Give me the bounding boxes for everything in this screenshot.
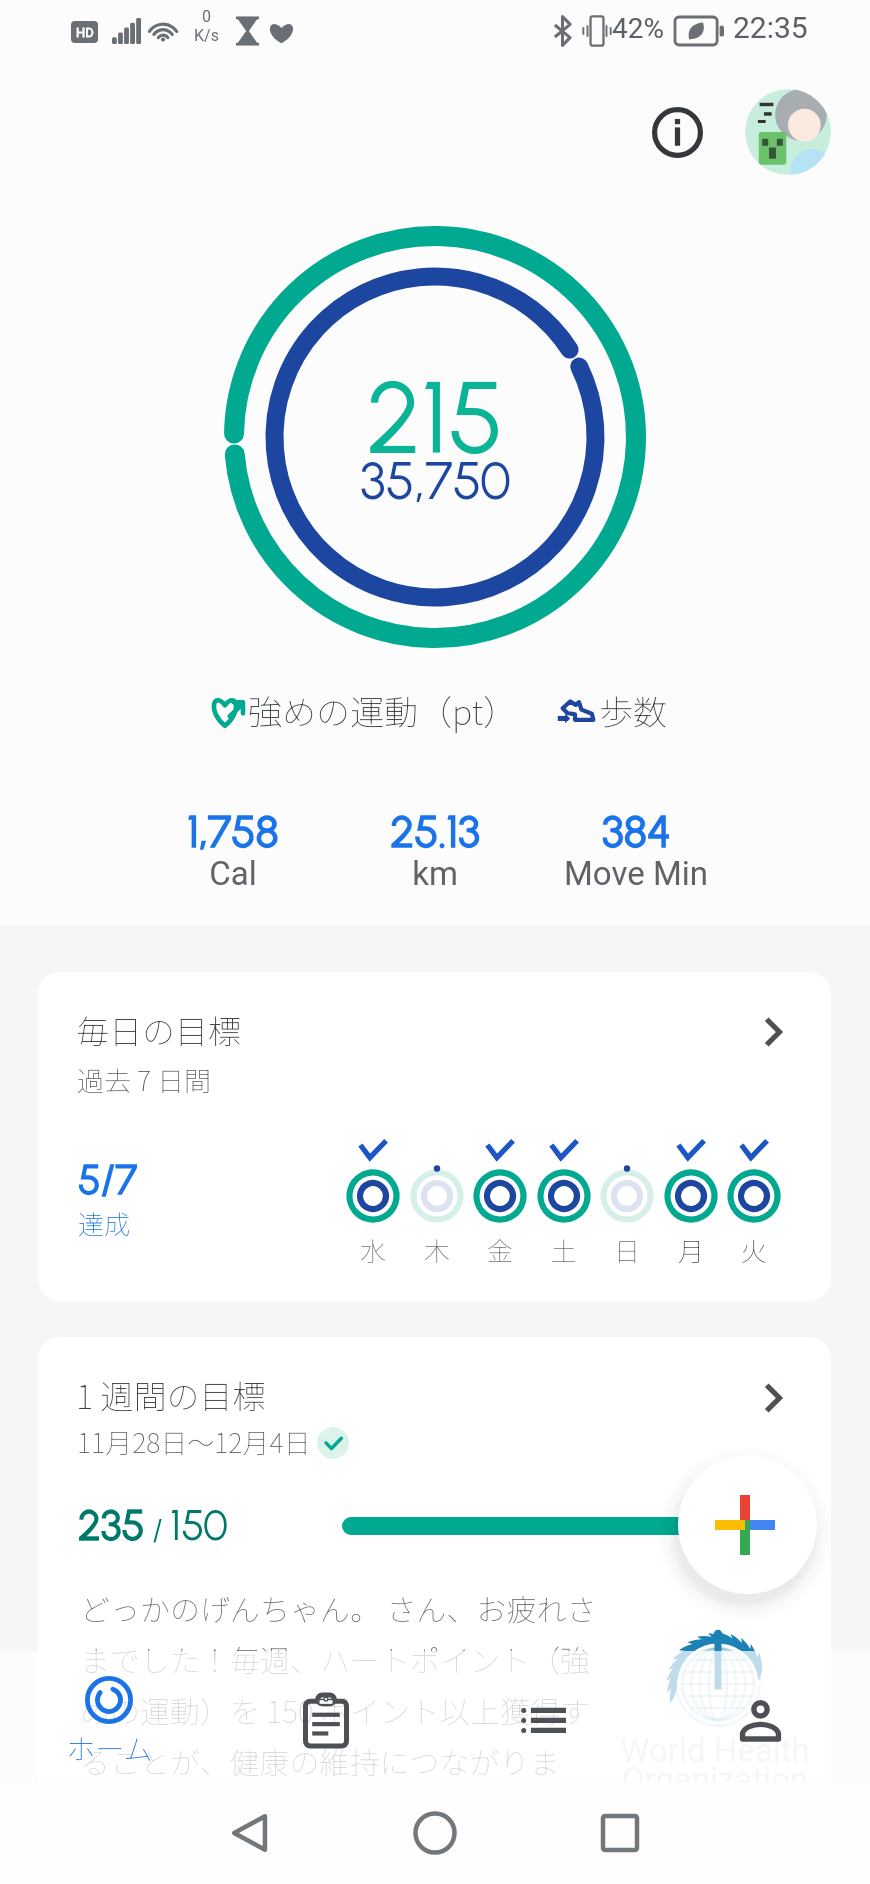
staticText: World Health	[605, 1731, 825, 1770]
staticText: Organization	[605, 1760, 825, 1799]
staticText: 42%	[612, 12, 664, 45]
staticText: 水	[356, 1231, 390, 1269]
staticText: 22:35	[733, 10, 808, 45]
staticText: 日	[610, 1231, 644, 1269]
staticText: 火	[737, 1231, 771, 1269]
button[interactable]: Journal	[238, 1651, 413, 1782]
staticText: HD	[76, 25, 94, 40]
staticText: 215	[366, 357, 504, 478]
button[interactable]: Add	[678, 1455, 817, 1594]
button[interactable]: ホーム	[22, 1651, 197, 1782]
staticText: Move Min	[564, 854, 708, 893]
staticText: 150	[170, 1500, 229, 1550]
staticText: 384	[602, 805, 671, 858]
staticText: 土	[547, 1231, 581, 1269]
staticText: 強めの運動（pt）	[248, 686, 518, 735]
button[interactable]: 1,758	[123, 805, 343, 897]
button[interactable]: Browse	[456, 1651, 631, 1782]
staticText: 歩数	[599, 686, 667, 735]
button[interactable]: Profile	[745, 89, 831, 175]
staticText: 木	[420, 1231, 454, 1269]
staticText: 金	[483, 1231, 517, 1269]
staticText: /	[145, 1512, 170, 1548]
button[interactable]: Back	[180, 1782, 320, 1884]
staticText: 月	[674, 1231, 708, 1269]
button[interactable]: Info	[629, 84, 725, 180]
staticText: 0	[202, 7, 211, 26]
staticText: どっかのげんちゃん。 さん、お疲れさまでした！毎週、ハートポイント（強めの運動）…	[80, 1586, 600, 1782]
button[interactable]: 毎日の目標	[38, 972, 831, 1301]
staticText: 35,750	[360, 450, 511, 512]
staticText: 毎日の目標	[76, 1006, 241, 1054]
staticText: Cal	[209, 854, 257, 893]
staticText: 1 週間の目標	[76, 1371, 266, 1419]
staticText: ホーム	[49, 1726, 170, 1768]
staticText: 1,758	[187, 805, 279, 858]
button[interactable]: 25.13	[325, 805, 545, 897]
button[interactable]: 1 週間の目標	[38, 1337, 831, 1837]
staticText: 過去 7 日間	[77, 1060, 211, 1099]
button[interactable]: Profile	[673, 1651, 848, 1782]
button[interactable]: Recents	[550, 1782, 690, 1884]
button[interactable]: 384	[526, 805, 746, 897]
staticText: 5/7	[78, 1155, 138, 1204]
staticText: K/s	[194, 26, 219, 45]
staticText: 11月28日〜12月4日	[77, 1422, 311, 1461]
staticText: km	[412, 854, 458, 893]
button[interactable]: Home	[365, 1782, 505, 1884]
staticText: 25.13	[390, 805, 480, 858]
staticText: 235	[78, 1500, 145, 1550]
staticText: 達成	[78, 1204, 131, 1242]
